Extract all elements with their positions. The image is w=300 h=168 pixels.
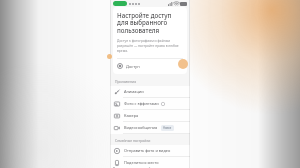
staticText: Камера [124, 113, 139, 118]
staticText: Новое [163, 126, 172, 130]
button[interactable]: Камера [110, 110, 190, 122]
staticText: Анимации [124, 89, 144, 94]
button[interactable]: Поделиться место [110, 157, 190, 168]
button[interactable]: Отправить фото и видео [110, 145, 190, 157]
button[interactable]: Доступ [117, 62, 183, 70]
button[interactable]: Анимации [110, 86, 190, 98]
staticText: Доступ [126, 64, 140, 69]
staticText: Семейные настройки [115, 138, 151, 143]
staticText: Доступ к фотографиям и файлам разрешён —… [117, 38, 183, 53]
staticText: Фото с эффектами [124, 101, 159, 106]
button[interactable]: Видеосообщения [110, 122, 190, 134]
staticText: Видеосообщения [124, 125, 158, 130]
staticText: Настройте доступ для выбранного пользова… [117, 11, 183, 35]
staticText: Приложения [115, 79, 137, 84]
staticText: Отправить фото и видео [124, 148, 171, 153]
button[interactable]: Фото с эффектами [110, 98, 190, 110]
staticText: Поделиться место [124, 160, 159, 165]
